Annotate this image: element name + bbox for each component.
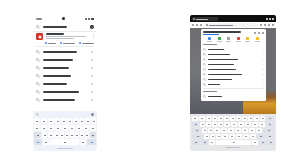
button[interactable] xyxy=(245,37,250,42)
button[interactable]: Key xyxy=(252,122,258,127)
button[interactable]: Key xyxy=(91,118,96,124)
button[interactable]: Key xyxy=(238,122,244,127)
button[interactable]: Key xyxy=(76,125,82,131)
button[interactable]: Key xyxy=(216,140,251,145)
button[interactable]: Key xyxy=(41,118,47,124)
button[interactable]: Key xyxy=(41,125,47,131)
button[interactable]: Key xyxy=(61,118,66,124)
button[interactable]: Key xyxy=(55,118,60,124)
button[interactable]: Key xyxy=(245,122,251,127)
button[interactable] xyxy=(33,56,97,64)
button[interactable]: Key xyxy=(242,128,248,133)
button[interactable]: Key xyxy=(80,132,84,138)
button[interactable]: Key xyxy=(248,116,253,121)
button[interactable]: Key xyxy=(192,134,203,139)
button[interactable]: Key xyxy=(221,128,227,133)
button[interactable] xyxy=(203,77,264,82)
button[interactable]: Key xyxy=(48,125,54,131)
button[interactable]: Key xyxy=(256,128,262,133)
button[interactable]: Key xyxy=(202,128,207,133)
button[interactable] xyxy=(203,82,264,87)
button[interactable] xyxy=(33,80,97,88)
button[interactable] xyxy=(203,47,264,52)
button[interactable] xyxy=(217,37,222,42)
button[interactable] xyxy=(33,96,97,104)
button[interactable]: Key xyxy=(209,140,215,145)
button[interactable] xyxy=(60,42,75,44)
button[interactable] xyxy=(203,94,264,99)
button[interactable]: Key xyxy=(249,128,255,133)
button[interactable]: Key xyxy=(55,125,61,131)
button[interactable]: Key xyxy=(67,118,72,124)
button[interactable]: Key xyxy=(267,140,274,145)
button[interactable]: Key xyxy=(235,128,241,133)
button[interactable]: Key xyxy=(257,134,265,139)
button[interactable]: Clear search xyxy=(90,25,94,29)
button[interactable]: Key xyxy=(218,122,223,127)
button[interactable] xyxy=(192,17,218,21)
button[interactable]: Key xyxy=(69,125,75,131)
button[interactable]: Key xyxy=(204,134,209,139)
button[interactable]: Clear search xyxy=(33,22,97,31)
button[interactable]: Key xyxy=(34,125,40,131)
button[interactable]: Key xyxy=(260,116,265,121)
button[interactable] xyxy=(33,64,97,72)
button[interactable]: Key xyxy=(48,132,53,138)
button[interactable]: Key xyxy=(266,134,274,139)
button[interactable] xyxy=(33,32,97,48)
button[interactable]: Key xyxy=(216,134,221,139)
button[interactable]: Key xyxy=(85,132,89,138)
button[interactable] xyxy=(203,67,264,72)
button[interactable]: Key xyxy=(43,139,49,145)
button[interactable] xyxy=(33,48,97,56)
button[interactable]: Key xyxy=(70,132,74,138)
button[interactable] xyxy=(204,23,258,27)
button[interactable]: Key xyxy=(236,116,241,121)
button[interactable]: Key xyxy=(254,116,259,121)
button[interactable] xyxy=(79,42,94,44)
button[interactable]: Key xyxy=(200,122,205,127)
button[interactable] xyxy=(207,37,212,42)
button[interactable]: Key xyxy=(54,132,59,138)
button[interactable]: Key xyxy=(80,139,86,145)
button[interactable] xyxy=(236,37,241,42)
button[interactable]: Key xyxy=(192,116,198,121)
button[interactable]: Key xyxy=(243,134,249,139)
button[interactable]: Key xyxy=(252,140,258,145)
button[interactable]: Key xyxy=(212,122,217,127)
button[interactable]: Key xyxy=(192,128,201,133)
button[interactable]: Key xyxy=(229,134,235,139)
button[interactable]: Key xyxy=(236,134,242,139)
button[interactable] xyxy=(33,72,97,80)
button[interactable]: Key xyxy=(201,140,208,145)
button[interactable]: Key xyxy=(90,125,96,131)
button[interactable]: Key xyxy=(206,122,211,127)
button[interactable] xyxy=(203,57,264,62)
button[interactable] xyxy=(203,72,264,77)
button[interactable] xyxy=(45,42,56,44)
button[interactable]: Key xyxy=(214,128,220,133)
button[interactable]: Key xyxy=(62,125,68,131)
button[interactable]: Key xyxy=(192,122,199,127)
button[interactable]: Key xyxy=(250,134,256,139)
button[interactable]: Key xyxy=(34,132,41,138)
button[interactable]: Key xyxy=(87,139,96,145)
button[interactable]: Key xyxy=(75,132,79,138)
button[interactable]: Key xyxy=(206,116,211,121)
button[interactable]: Key xyxy=(48,118,54,124)
button[interactable]: Key xyxy=(65,132,69,138)
button[interactable] xyxy=(203,62,264,67)
